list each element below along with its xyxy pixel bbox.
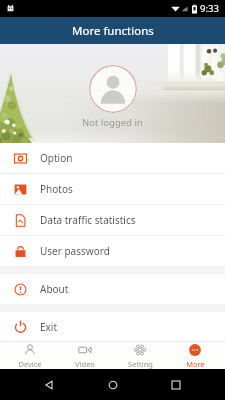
- staticText: Photos: [40, 182, 73, 196]
- button[interactable]: Recents: [161, 370, 191, 400]
- button[interactable]: Data traffic statistics: [0, 205, 225, 235]
- staticText: Data traffic statistics: [40, 213, 136, 227]
- button[interactable]: Video: [60, 343, 110, 369]
- button[interactable]: More: [170, 343, 220, 369]
- button[interactable]: Device: [5, 343, 55, 369]
- button[interactable]: Home: [98, 370, 128, 400]
- button[interactable]: User password: [0, 236, 225, 266]
- button[interactable]: About: [0, 274, 225, 304]
- staticText: Not logged in: [82, 116, 143, 129]
- staticText: Device: [18, 359, 42, 369]
- staticText: More: [186, 359, 205, 369]
- button[interactable]: Exit: [0, 312, 225, 341]
- staticText: Setting: [128, 359, 153, 369]
- button[interactable]: Account: [89, 65, 137, 113]
- staticText: User password: [40, 244, 110, 258]
- staticText: Exit: [40, 320, 58, 334]
- button[interactable]: Option: [0, 143, 225, 173]
- staticText: Video: [75, 359, 95, 369]
- staticText: About: [40, 282, 69, 296]
- staticText: Option: [40, 151, 73, 165]
- button[interactable]: Photos: [0, 174, 225, 204]
- button[interactable]: Setting: [115, 343, 165, 369]
- button[interactable]: Back: [34, 370, 64, 400]
- staticText: 9:33: [200, 2, 219, 15]
- staticText: More functions: [72, 23, 154, 39]
